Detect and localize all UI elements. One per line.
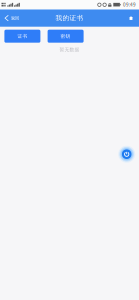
button[interactable]: 证书 — [4, 30, 40, 43]
staticText: 密钥 — [61, 33, 71, 39]
staticText: 暂无数据 — [59, 47, 79, 53]
button[interactable]: Power — [118, 145, 136, 163]
staticText: 返回 — [11, 15, 19, 21]
button[interactable]: Home — [123, 9, 139, 27]
staticText: 证书 — [17, 33, 27, 39]
button[interactable]: 密钥 — [48, 30, 84, 43]
staticText: 我的证书 — [55, 14, 83, 22]
button[interactable]: 返回 — [0, 9, 23, 27]
staticText: 09:49 — [123, 2, 136, 8]
